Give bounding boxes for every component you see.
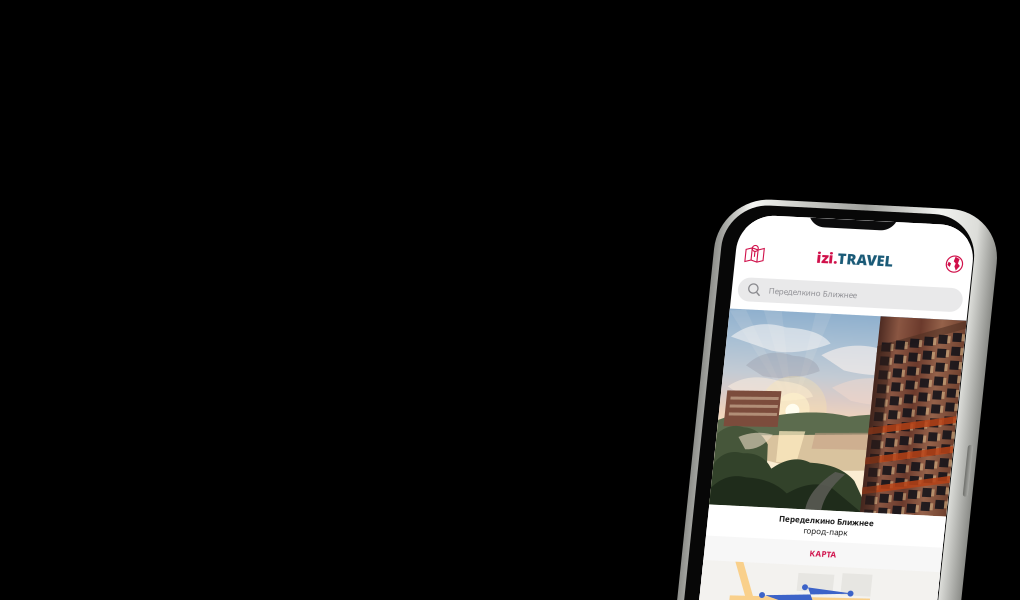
staticText: Переделкино Ближнее <box>812 510 907 521</box>
staticText: izi <box>822 242 839 262</box>
staticText: город-парк <box>838 521 882 531</box>
staticText: . <box>839 242 843 262</box>
button[interactable]: Переделкино Ближнее <box>747 276 972 300</box>
button[interactable]: Guides <box>750 242 770 262</box>
button[interactable]: izi <box>822 242 899 262</box>
staticText: Переделкино Ближнее <box>778 283 866 293</box>
staticText: TRAVEL <box>843 242 899 262</box>
button[interactable]: Language <box>951 243 969 261</box>
